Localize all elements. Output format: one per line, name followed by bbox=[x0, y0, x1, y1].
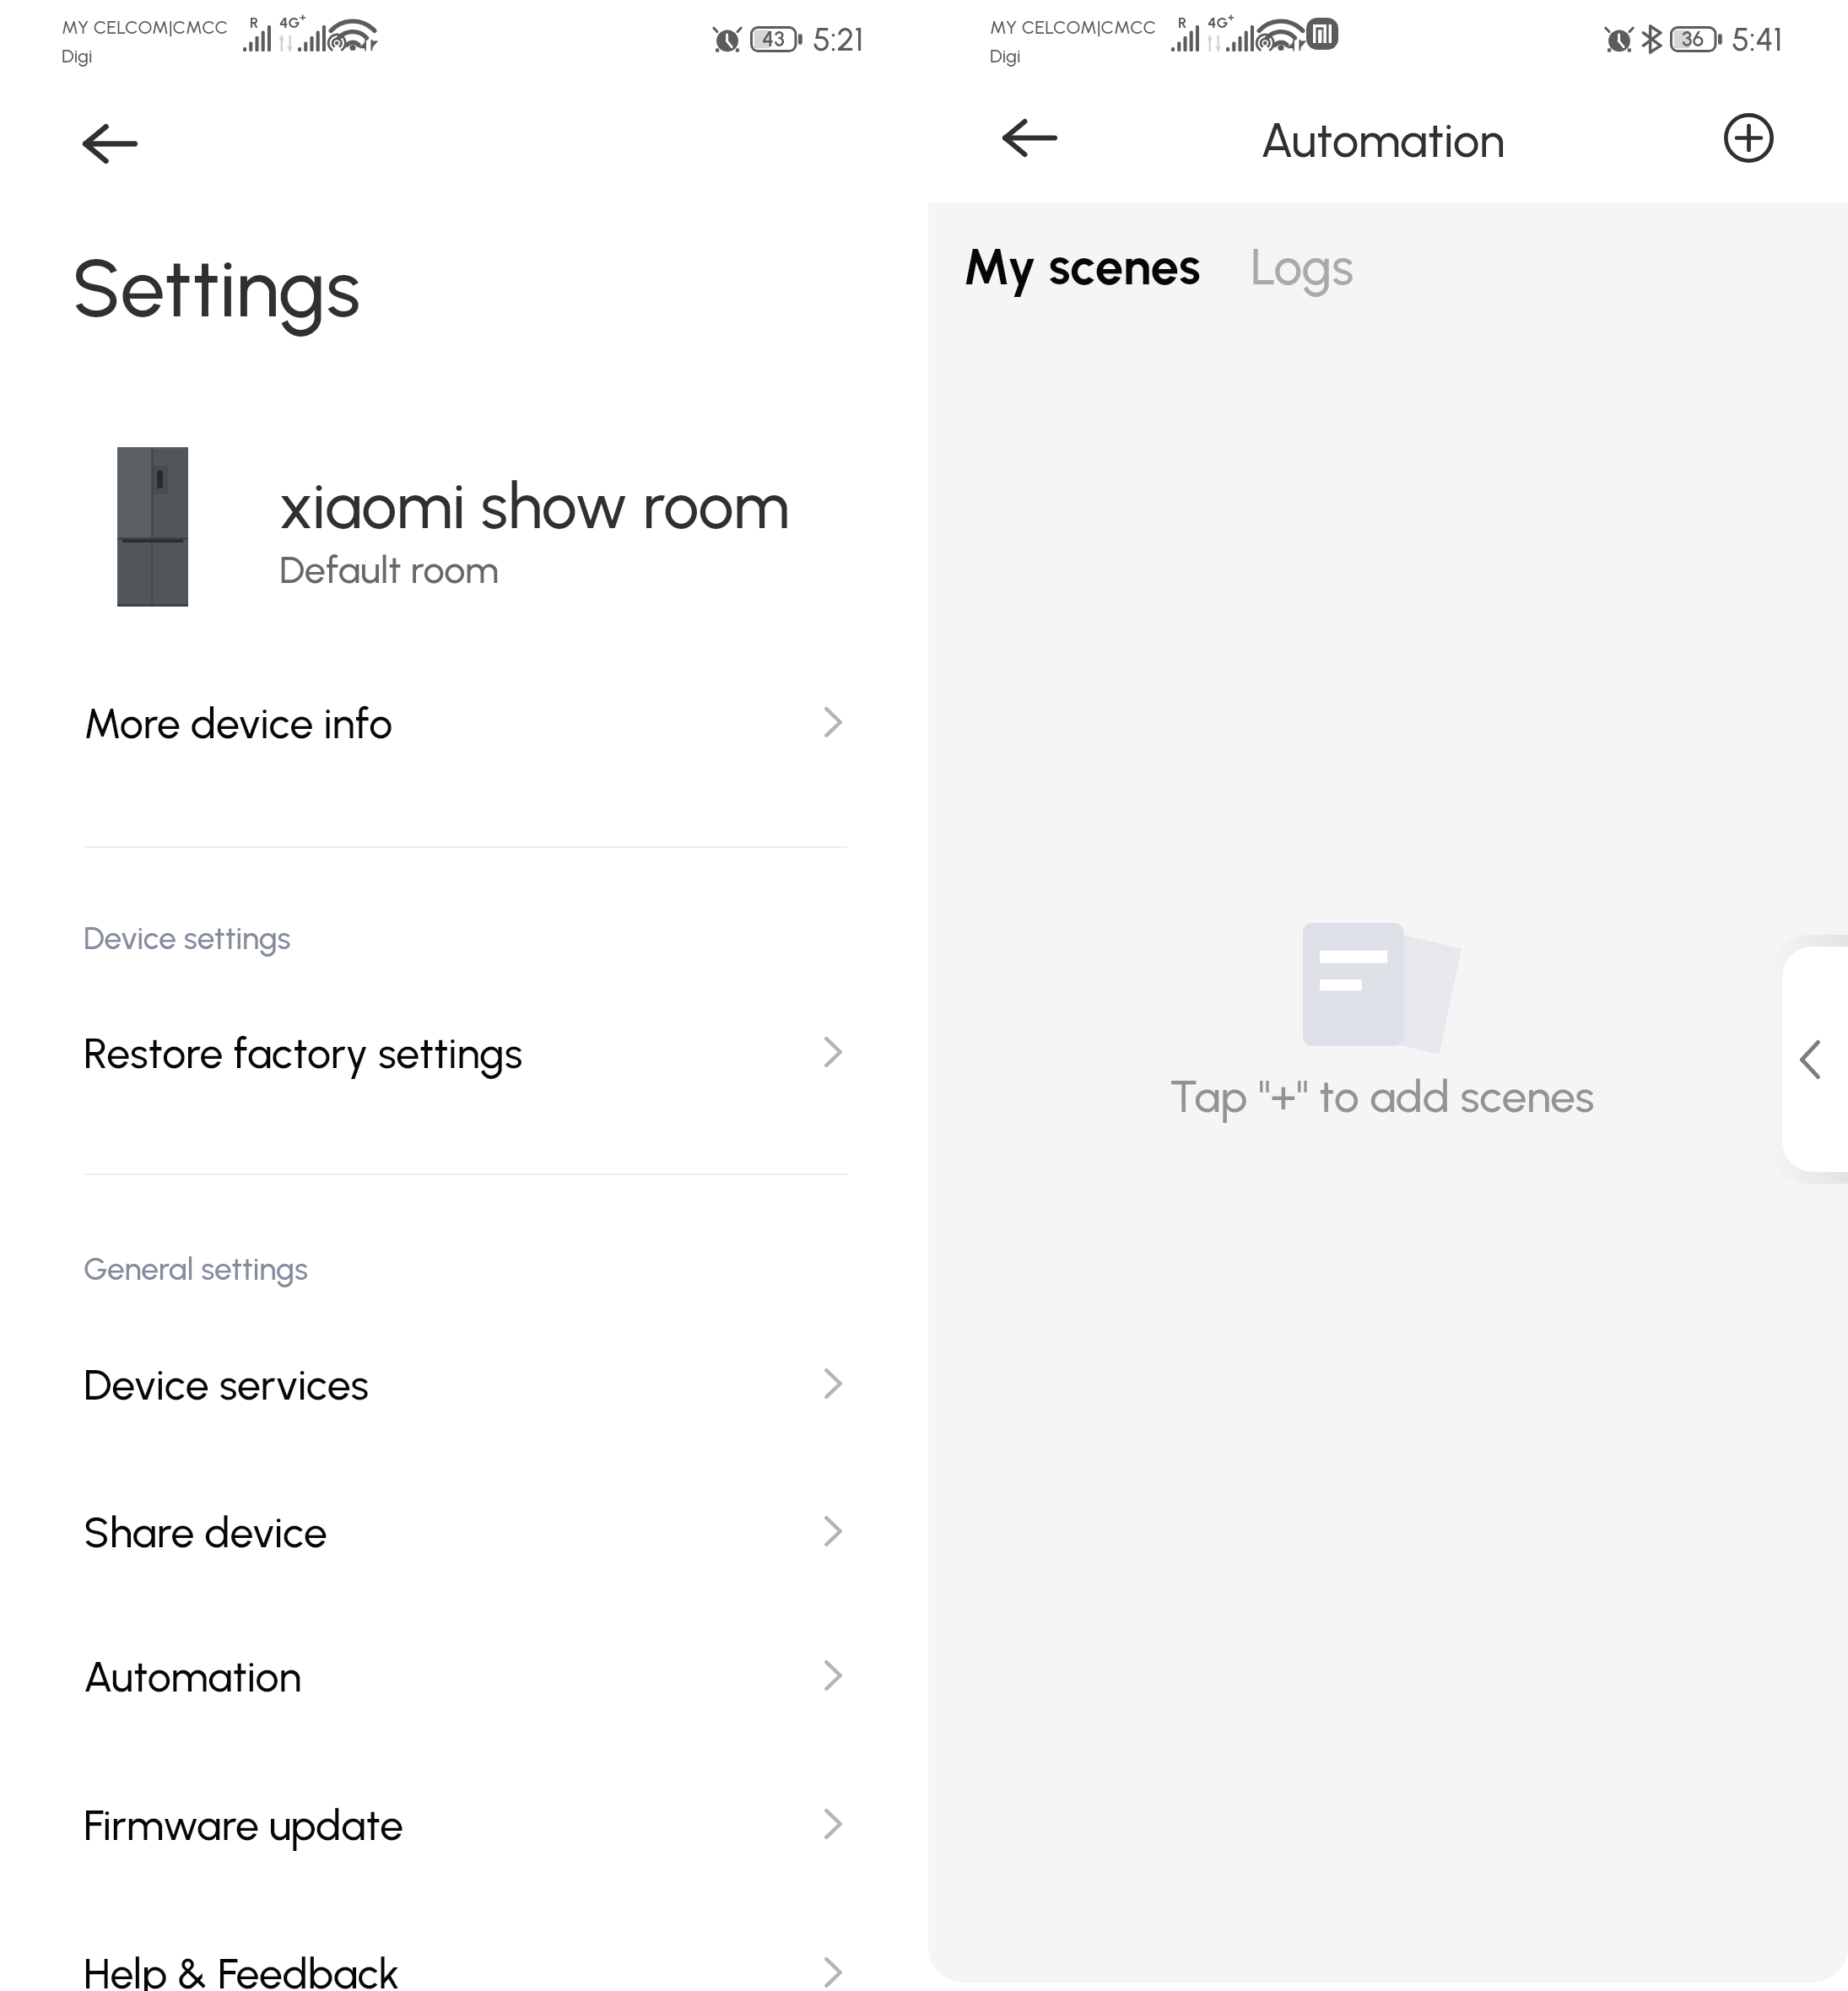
staticText: Firmware update bbox=[84, 1799, 404, 1850]
staticText: Tap "+" to add scenes bbox=[1170, 1070, 1595, 1124]
staticText: Settings bbox=[72, 240, 361, 337]
staticText: Digi bbox=[990, 45, 1021, 67]
staticText: 43 bbox=[762, 26, 785, 51]
staticText: 5:41 bbox=[1732, 20, 1783, 59]
button[interactable]: More device info bbox=[0, 650, 928, 795]
staticText: Default room bbox=[279, 547, 500, 592]
staticText: xiaomi show room bbox=[278, 468, 790, 544]
staticText: 4G bbox=[1208, 13, 1229, 32]
button[interactable]: Back bbox=[979, 87, 1080, 188]
staticText: 5:21 bbox=[813, 20, 864, 59]
staticText: Digi bbox=[62, 45, 93, 67]
staticText: More device info bbox=[84, 698, 393, 748]
staticText: General settings bbox=[84, 1250, 308, 1287]
button[interactable]: Firmware update bbox=[0, 1751, 928, 1897]
staticText: Automation bbox=[84, 1651, 302, 1702]
staticText: Device services bbox=[84, 1359, 370, 1410]
staticText: Device settings bbox=[84, 920, 291, 957]
staticText: Help & Feedback bbox=[84, 1948, 400, 1991]
button[interactable]: Logs bbox=[1234, 218, 1371, 316]
staticText: R bbox=[1178, 14, 1187, 31]
button[interactable]: Add scene bbox=[1698, 87, 1799, 188]
staticText: + bbox=[300, 11, 306, 24]
button[interactable]: Share device bbox=[0, 1459, 928, 1604]
staticText: Restore factory settings bbox=[84, 1028, 523, 1078]
staticText: R bbox=[250, 14, 259, 31]
staticText: 36 bbox=[1682, 26, 1705, 51]
staticText: + bbox=[1228, 11, 1235, 24]
staticText: My scenes bbox=[963, 236, 1201, 297]
staticText: MY CELCOM|CMCC bbox=[62, 16, 229, 38]
staticText: Share device bbox=[84, 1507, 327, 1557]
staticText: 4G bbox=[279, 13, 300, 32]
button[interactable]: Automation bbox=[0, 1603, 928, 1748]
staticText: MY CELCOM|CMCC bbox=[990, 16, 1157, 38]
button[interactable]: Back bbox=[59, 93, 160, 194]
button[interactable]: Device services bbox=[0, 1311, 928, 1456]
button[interactable]: Open drawer bbox=[1782, 947, 1848, 1172]
button[interactable]: My scenes bbox=[946, 218, 1218, 316]
button[interactable]: Restore factory settings bbox=[0, 979, 928, 1125]
button[interactable]: Help & Feedback bbox=[0, 1900, 928, 1991]
staticText: Automation bbox=[1261, 112, 1505, 169]
staticText: Logs bbox=[1251, 236, 1354, 297]
